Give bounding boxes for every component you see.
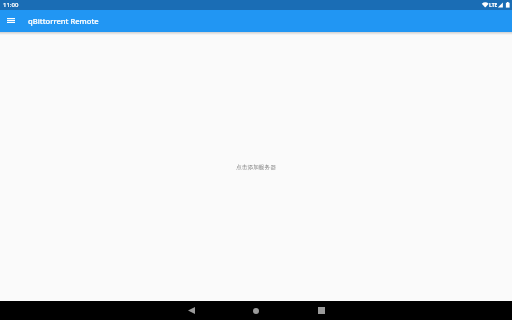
staticText: LTE [489,2,498,9]
button[interactable]: Recent apps [307,301,335,320]
button[interactable]: Open navigation menu [2,10,21,32]
staticText: 11:00 [3,1,19,9]
button[interactable]: 点击添加服务器 [236,164,276,171]
button[interactable]: Back [177,301,205,320]
staticText: qBittorrent Remote [28,16,99,26]
button[interactable]: Home [242,301,270,320]
staticText: 点击添加服务器 [236,164,276,171]
